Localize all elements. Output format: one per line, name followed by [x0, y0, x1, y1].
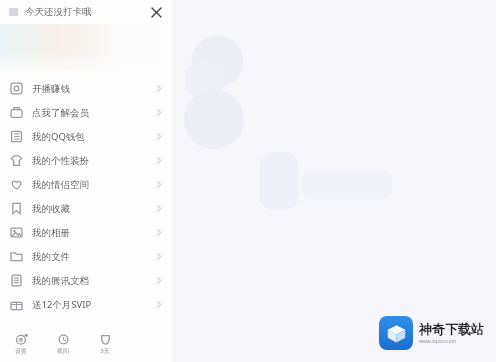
button[interactable]: 夜间: [50, 334, 76, 355]
button[interactable]: 我的相册: [0, 220, 172, 244]
staticText: 3天: [100, 347, 110, 355]
button[interactable]: 我的QQ钱包: [0, 124, 172, 148]
staticText: 我的情侣空间: [32, 179, 89, 191]
staticText: 开播赚钱: [32, 83, 70, 95]
staticText: 我的文件: [32, 251, 70, 263]
staticText: 我的QQ钱包: [32, 130, 85, 143]
staticText: 送12个月SVIP: [32, 298, 92, 311]
button[interactable]: 我的收藏: [0, 196, 172, 220]
button[interactable]: 点我了解会员: [0, 100, 172, 124]
staticText: 神奇下载站: [419, 321, 484, 337]
button[interactable]: 设置: [8, 334, 34, 355]
button[interactable]: 送12个月SVIP: [0, 292, 172, 316]
button[interactable]: 我的腾讯文档: [0, 268, 172, 292]
staticText: www.sqxzz.com: [419, 338, 457, 345]
button[interactable]: 3天: [92, 334, 118, 355]
staticText: 我的个性装扮: [32, 155, 89, 167]
staticText: 我的腾讯文档: [32, 275, 89, 287]
button[interactable]: 我的个性装扮: [0, 148, 172, 172]
staticText: 设置: [15, 347, 27, 355]
button[interactable]: 我的文件: [0, 244, 172, 268]
button[interactable]: 开播赚钱: [0, 76, 172, 100]
staticText: 夜间: [57, 347, 69, 355]
button[interactable]: Close: [148, 4, 164, 20]
staticText: 我的相册: [32, 227, 70, 239]
button[interactable]: 我的情侣空间: [0, 172, 172, 196]
staticText: 点我了解会员: [32, 107, 89, 119]
staticText: 我的收藏: [32, 203, 70, 215]
staticText: 今天还没打卡哦: [25, 6, 92, 18]
